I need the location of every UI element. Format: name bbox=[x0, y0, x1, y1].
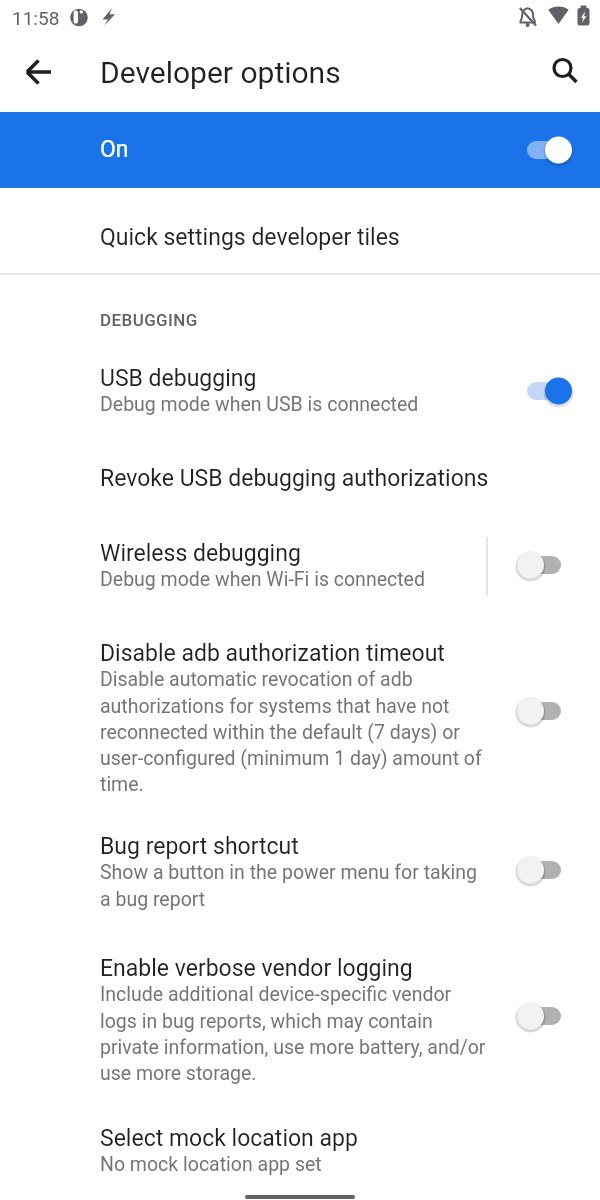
button[interactable]: Wireless debugging bbox=[0, 518, 600, 618]
button[interactable]: Enable verbose vendor logging bbox=[0, 928, 600, 1100]
button[interactable] bbox=[15, 48, 63, 96]
staticText: 11:58 bbox=[12, 7, 60, 29]
staticText: Debug mode when Wi-Fi is connected bbox=[100, 568, 425, 591]
staticText: Select mock location app bbox=[100, 1125, 358, 1152]
staticText: Wireless debugging bbox=[100, 540, 301, 567]
staticText: No mock location app set bbox=[100, 1153, 322, 1176]
button[interactable]: On bbox=[0, 112, 600, 188]
staticText: Bug report shortcut bbox=[100, 833, 299, 860]
button[interactable]: Quick settings developer tiles bbox=[0, 188, 600, 273]
staticText: Disable adb authorization timeout bbox=[100, 640, 445, 667]
button[interactable]: Select mock location app bbox=[0, 1100, 600, 1200]
button[interactable]: Revoke USB debugging authorizations bbox=[0, 440, 600, 518]
staticText: Show a button in the power menu for taki… bbox=[100, 861, 477, 911]
button[interactable]: USB debugging bbox=[0, 340, 600, 440]
staticText: Quick settings developer tiles bbox=[100, 224, 400, 251]
staticText: Developer options bbox=[100, 55, 341, 90]
staticText: Revoke USB debugging authorizations bbox=[100, 465, 489, 492]
button[interactable]: Disable adb authorization timeout bbox=[0, 618, 600, 812]
staticText: Include additional device-specific vendo… bbox=[100, 983, 486, 1085]
staticText: On bbox=[100, 136, 129, 163]
staticText: Debug mode when USB is connected bbox=[100, 393, 419, 416]
button[interactable]: Bug report shortcut bbox=[0, 812, 600, 928]
staticText: Enable verbose vendor logging bbox=[100, 955, 413, 982]
staticText: DEBUGGING bbox=[100, 310, 198, 330]
button[interactable] bbox=[539, 44, 587, 92]
staticText: USB debugging bbox=[100, 365, 257, 392]
staticText: Disable automatic revocation of adb auth… bbox=[100, 668, 482, 796]
